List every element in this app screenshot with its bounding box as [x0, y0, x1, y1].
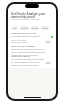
- staticText: ‹: [11, 9, 13, 12]
- button[interactable]: Compare: [20, 26, 29, 30]
- staticText: Tips: [13, 27, 17, 30]
- staticText: Three simple steps: [11, 41, 28, 44]
- button[interactable]: Guides: [41, 26, 49, 30]
- staticText: Guides: [42, 27, 49, 30]
- staticText: GetCheck: Analyze your: [11, 12, 46, 16]
- button[interactable]: Back: [10, 9, 13, 12]
- staticText: Chat: [46, 62, 50, 64]
- staticText: day, every weekday. Write to our: [11, 61, 40, 64]
- staticText: current price in a few seconds.: [11, 54, 39, 57]
- staticText: Quick start guide: [11, 39, 27, 42]
- staticText: How to verify a listing: [11, 45, 35, 48]
- button[interactable]: Reviews: [31, 26, 39, 30]
- staticText: support desk and we follow up.: [11, 64, 39, 67]
- staticText: no account needed for the basics: [11, 35, 41, 38]
- button[interactable]: Contact support: [45, 61, 51, 64]
- staticText: Paste the link and we check the seller: [11, 48, 45, 51]
- staticText: Open: [46, 41, 51, 43]
- button[interactable]: Tips: [11, 26, 18, 30]
- staticText: Compare: [20, 27, 29, 30]
- staticText: ownership proof: [11, 15, 36, 19]
- staticText: Updated 2 days ago · 4 min read: [11, 18, 40, 21]
- staticText: GetCheck is free to use: [11, 32, 37, 35]
- staticText: Reviews: [31, 27, 39, 30]
- staticText: Need more help?: [11, 55, 30, 58]
- button[interactable]: Open quick start guide: [45, 40, 51, 43]
- staticText: Our team replies within one business: [11, 58, 45, 61]
- other: Front camera: [25, 4, 39, 8]
- staticText: history, the registration record and the: [11, 51, 46, 54]
